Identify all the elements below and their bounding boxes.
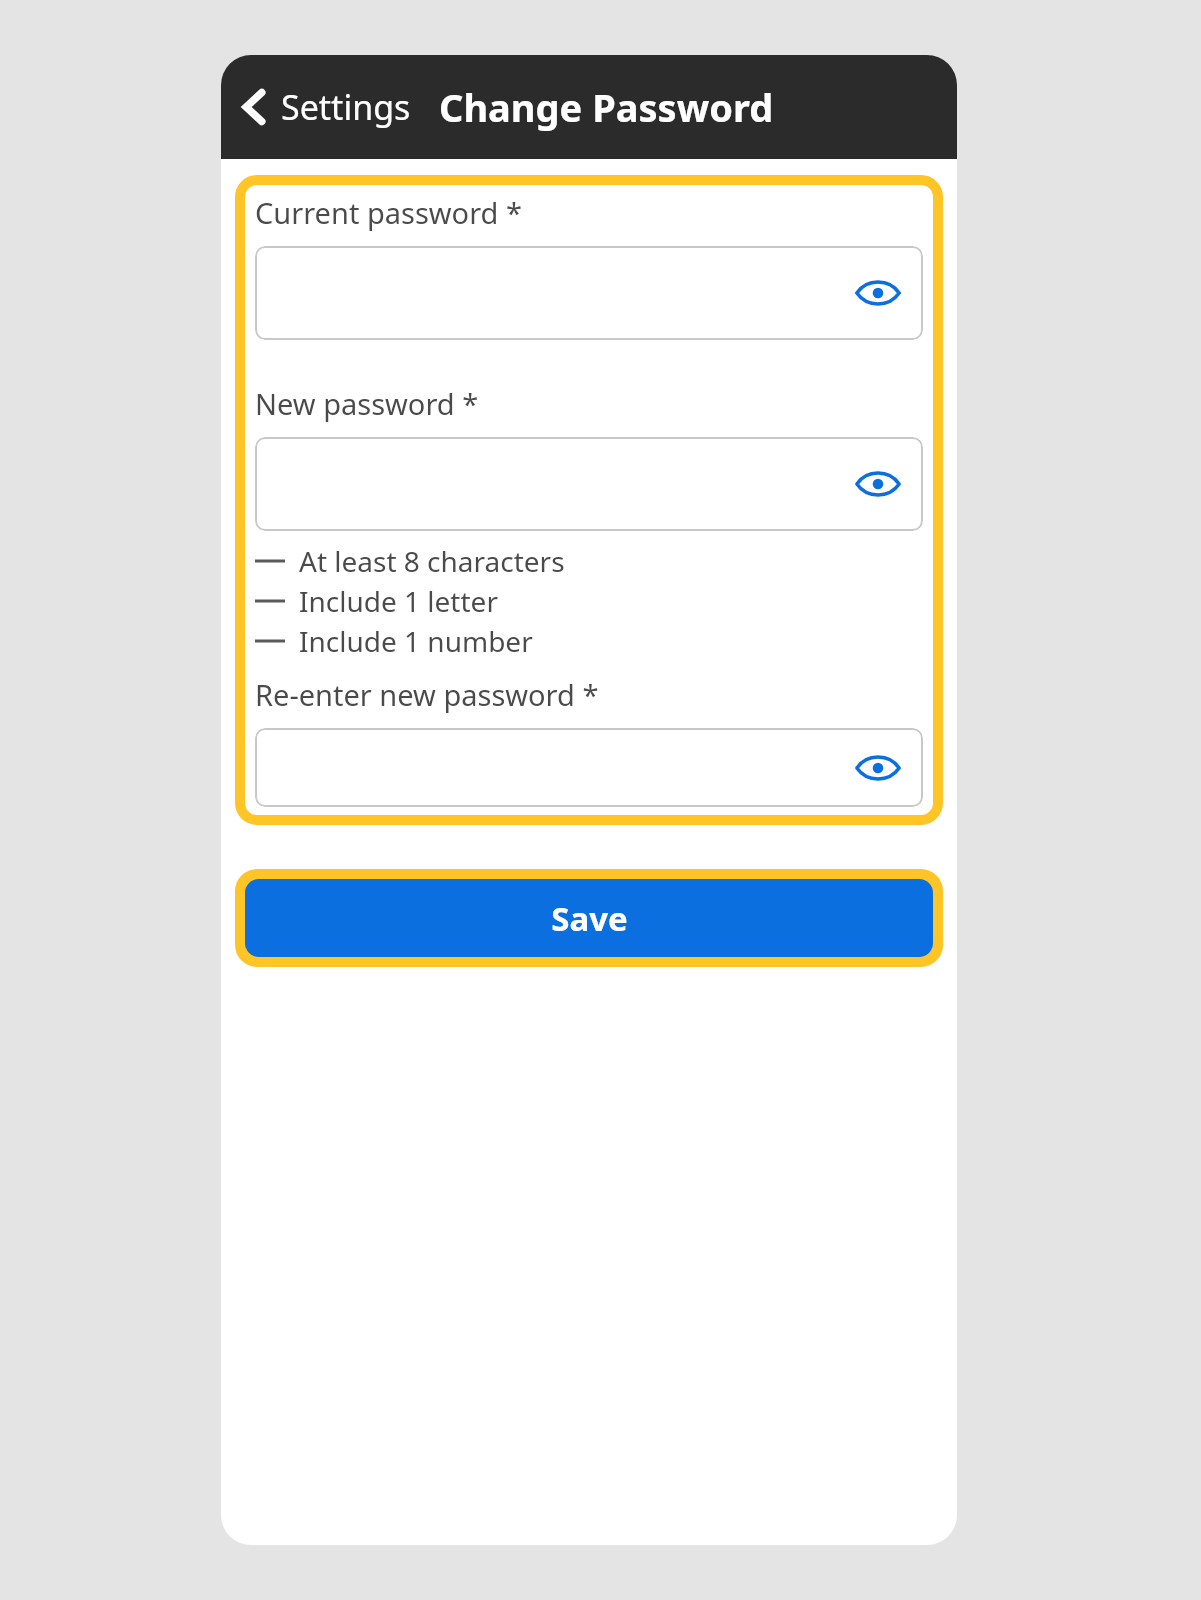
button[interactable]: Show password [855,751,901,785]
staticText: Settings [281,84,411,130]
staticText: Include 1 letter [299,582,498,620]
button[interactable]: Settings [235,78,417,136]
button[interactable]: Show password [855,467,901,501]
staticText: Save [551,896,628,941]
staticText: At least 8 characters [299,542,565,580]
staticText: Current password * [255,193,522,232]
staticText: Re-enter new password * [255,675,599,714]
button[interactable]: Current password * [235,175,943,825]
button[interactable]: Show password [255,246,923,340]
staticText: Change Password [439,81,774,133]
staticText: Include 1 number [299,622,533,660]
button[interactable]: Show password [855,276,901,310]
button[interactable]: Show password [255,437,923,531]
button[interactable]: Save [245,879,933,957]
button[interactable]: Show password [255,728,923,807]
staticText: New password * [255,384,479,423]
